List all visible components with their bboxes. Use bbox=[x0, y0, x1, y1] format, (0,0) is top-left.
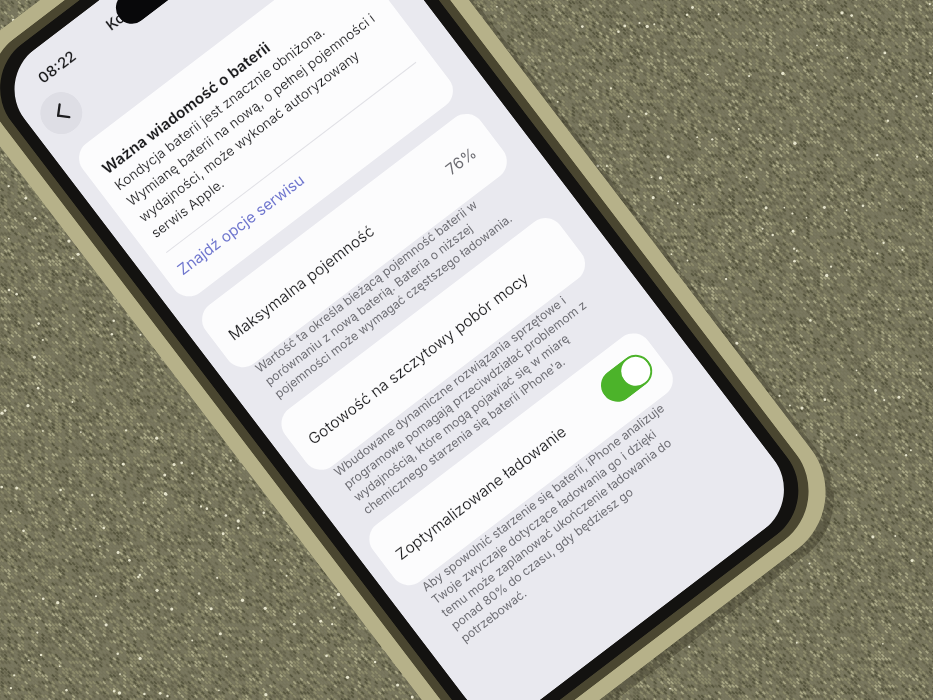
staticText: Aby spowolnić starzenie się baterii, iPh… bbox=[419, 399, 707, 645]
staticText: Maksymalna pojemność bbox=[225, 221, 379, 344]
button[interactable]: Znajdź opcje serwisu bbox=[174, 170, 308, 279]
staticText: Wbudowane dynamiczne rozwiązania sprzęto… bbox=[331, 284, 609, 517]
staticText: Zoptymalizowane ładowanie bbox=[392, 422, 571, 564]
staticText: Ważna wiadomość o baterii bbox=[98, 38, 274, 178]
staticText: Wartość ta określa bieżącą pojemność bat… bbox=[252, 181, 521, 401]
staticText: Gotowość na szczytowy pobór mocy bbox=[304, 269, 532, 449]
staticText: Kondycja baterii jest znacznie obniżona.… bbox=[111, 0, 406, 241]
staticText: 08:22 bbox=[34, 46, 79, 87]
button[interactable]: Back bbox=[32, 84, 91, 143]
staticText: Kondycja i ładowanie bbox=[102, 0, 235, 34]
staticText: 76% bbox=[442, 143, 480, 179]
button[interactable]: Optimised charging toggle bbox=[594, 348, 659, 408]
